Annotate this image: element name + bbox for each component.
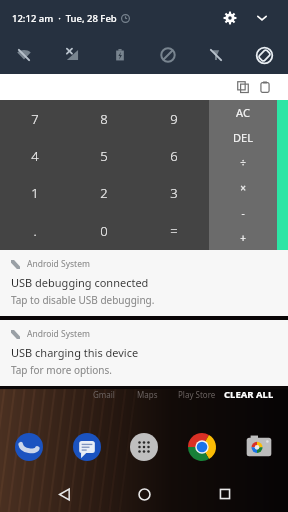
staticText: × <box>240 181 246 195</box>
staticText: CLEAR ALL <box>224 388 274 401</box>
button[interactable]: 3 <box>139 174 209 212</box>
staticText: AC <box>236 105 250 120</box>
button[interactable]: Messages <box>68 428 106 466</box>
button[interactable]: = <box>139 212 209 250</box>
staticText: = <box>170 222 178 240</box>
button[interactable]: 1 <box>0 174 69 212</box>
button[interactable]: CLEAR ALL <box>220 382 278 407</box>
button[interactable]: Chrome <box>183 428 221 466</box>
staticText: 7 <box>31 110 39 128</box>
staticText: 2 <box>100 184 108 202</box>
button[interactable]: . <box>0 212 69 250</box>
staticText: Play Store <box>178 389 216 400</box>
button[interactable]: Auto rotate <box>240 36 288 74</box>
button[interactable]: 4 <box>0 137 69 174</box>
button[interactable]: 2 <box>69 174 139 212</box>
button[interactable]: Do not disturb <box>144 36 192 74</box>
button[interactable]: Flashlight <box>192 36 240 74</box>
staticText: 8 <box>100 110 108 128</box>
staticText: 5 <box>100 147 108 165</box>
button[interactable]: 8 <box>69 100 139 137</box>
button[interactable]: Camera <box>240 428 278 466</box>
staticText: + <box>240 231 246 245</box>
button[interactable]: Android System <box>0 320 288 386</box>
button[interactable]: × <box>209 175 277 200</box>
staticText: Tap for more options. <box>11 363 112 377</box>
button[interactable]: Copy <box>232 76 254 98</box>
button[interactable]: 5 <box>69 137 139 174</box>
staticText: 12:12 am · Tue, 28 Feb <box>12 12 117 25</box>
staticText: Tap to disable USB debugging. <box>11 293 155 307</box>
button[interactable]: Settings <box>216 4 244 32</box>
button[interactable]: 9 <box>139 100 209 137</box>
button[interactable]: Mobile data off <box>48 36 96 74</box>
staticText: 4 <box>31 147 39 165</box>
button[interactable]: Back <box>47 477 81 511</box>
button[interactable]: 6 <box>139 137 209 174</box>
button[interactable]: Clipboard <box>254 76 276 98</box>
staticText: 9 <box>170 110 178 128</box>
staticText: 0 <box>100 222 108 240</box>
button[interactable]: - <box>209 200 277 225</box>
button[interactable]: All apps <box>125 428 163 466</box>
staticText: . <box>33 222 37 240</box>
staticText: Android System <box>27 328 90 340</box>
staticText: Maps <box>137 389 158 400</box>
button[interactable]: AC <box>209 100 277 125</box>
button[interactable]: ÷ <box>209 150 277 175</box>
button[interactable]: Battery saver <box>96 36 144 74</box>
staticText: DEL <box>233 130 253 145</box>
staticText: USB debugging connected <box>11 275 149 290</box>
button[interactable]: Android System <box>0 250 288 316</box>
button[interactable]: Home <box>127 477 161 511</box>
staticText: Android System <box>27 258 90 270</box>
button[interactable]: Wi-Fi off <box>0 36 48 74</box>
staticText: Gmail <box>93 389 115 400</box>
staticText: 3 <box>170 184 178 202</box>
button[interactable]: 7 <box>0 100 69 137</box>
button[interactable]: Phone <box>10 428 48 466</box>
staticText: - <box>241 206 245 220</box>
staticText: 1 <box>31 184 39 202</box>
button[interactable]: + <box>209 225 277 250</box>
button[interactable]: Recent apps <box>208 477 242 511</box>
staticText: ÷ <box>240 156 246 170</box>
button[interactable]: 0 <box>69 212 139 250</box>
button[interactable]: DEL <box>209 125 277 150</box>
button[interactable]: Collapse <box>248 4 276 32</box>
staticText: 6 <box>170 147 178 165</box>
staticText: USB charging this device <box>11 345 139 360</box>
